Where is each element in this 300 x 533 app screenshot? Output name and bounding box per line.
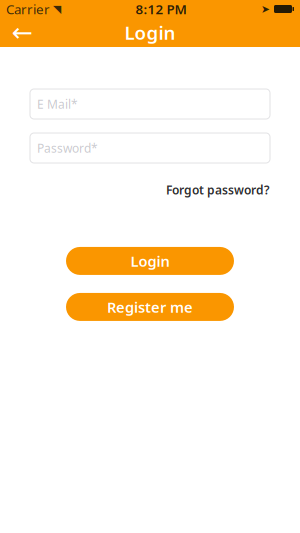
staticText: ← <box>11 18 32 47</box>
staticText: Carrier <box>6 0 50 18</box>
staticText: E Mail* <box>37 96 78 112</box>
button[interactable]: Register me <box>66 293 234 321</box>
staticText: Forgot password? <box>166 182 270 198</box>
button[interactable]: Forgot password? <box>166 182 270 198</box>
staticText: ◥ <box>53 3 61 15</box>
staticText: Login <box>130 251 169 271</box>
staticText: Register me <box>107 297 193 317</box>
staticText: Password* <box>37 140 98 156</box>
button[interactable]: Login <box>66 247 234 275</box>
button[interactable]: Back <box>0 18 44 47</box>
staticText: ➤ <box>261 3 270 15</box>
staticText: 8:12 PM <box>135 0 186 18</box>
staticText: Login <box>124 20 175 45</box>
